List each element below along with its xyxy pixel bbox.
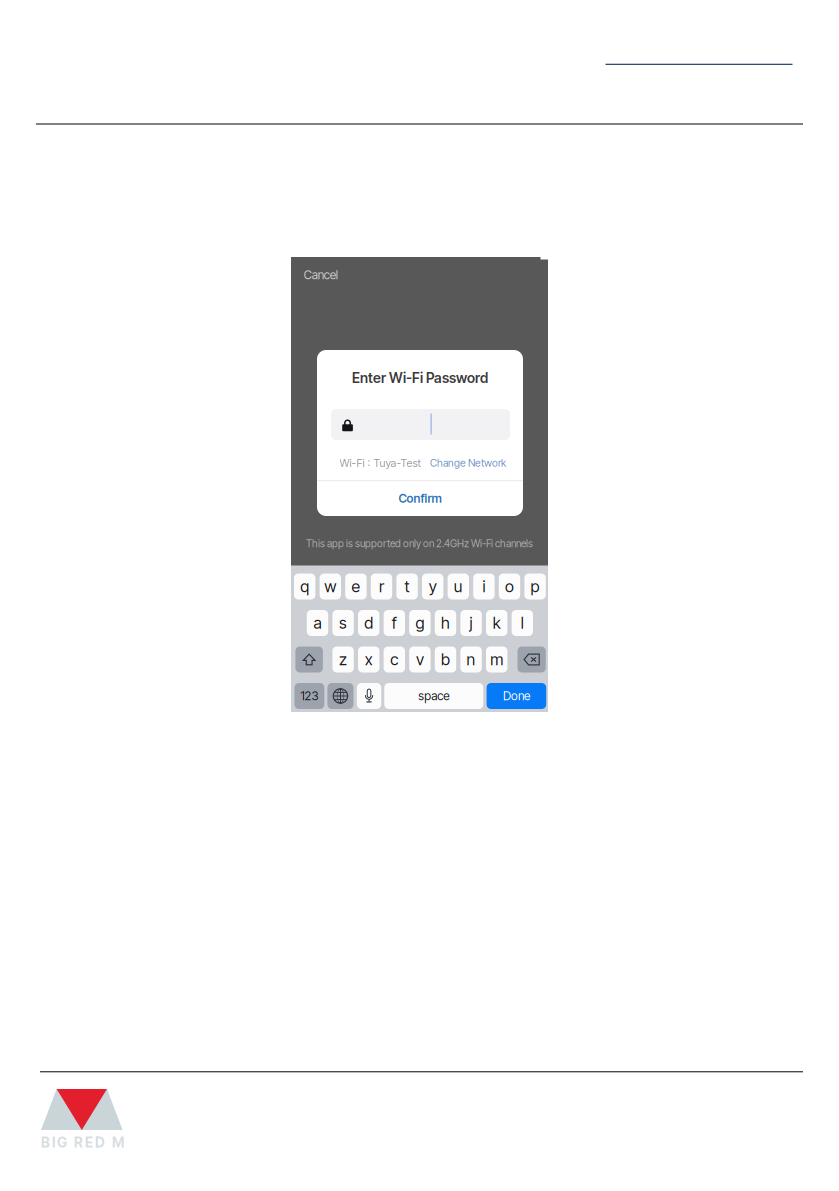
button[interactable]: Switch keyboard — [327, 683, 353, 709]
staticText: o — [505, 577, 514, 596]
button[interactable]: y — [422, 573, 443, 599]
button[interactable]: o — [499, 573, 520, 599]
button[interactable]: 123 — [294, 683, 324, 709]
button[interactable]: b — [435, 646, 456, 672]
button[interactable]: j — [460, 610, 482, 636]
staticText: b — [441, 650, 450, 669]
staticText: p — [531, 577, 540, 596]
button[interactable]: Change Network — [430, 455, 510, 471]
staticText: Cancel — [304, 268, 338, 282]
staticText: g — [415, 613, 424, 633]
staticText: Wi-Fi : Tuya-Test — [339, 456, 420, 470]
button[interactable]: l — [512, 610, 533, 636]
button[interactable]: Reference link — [605, 49, 792, 65]
staticText: n — [467, 650, 476, 669]
staticText: w — [324, 577, 336, 596]
staticText: s — [339, 613, 347, 633]
staticText: x — [365, 650, 373, 669]
button[interactable]: h — [435, 610, 456, 636]
staticText: l — [521, 613, 524, 633]
button[interactable]: n — [460, 646, 482, 672]
staticText: q — [300, 577, 309, 596]
button[interactable]: Shift — [295, 646, 323, 672]
staticText: space — [418, 689, 449, 703]
staticText: v — [416, 650, 424, 669]
staticText: d — [364, 613, 373, 633]
button[interactable]: q — [294, 573, 315, 599]
button[interactable]: k — [486, 610, 507, 636]
button[interactable]: g — [409, 610, 431, 636]
button[interactable]: e — [345, 573, 367, 599]
button[interactable]: d — [358, 610, 379, 636]
button[interactable]: Dictate — [357, 683, 381, 709]
button[interactable]: v — [409, 646, 431, 672]
button[interactable]: space — [384, 683, 483, 709]
staticText: f — [392, 613, 397, 633]
button[interactable]: p — [524, 573, 546, 599]
staticText: BIG RED M — [41, 1134, 124, 1151]
button[interactable]: z — [332, 646, 354, 672]
button[interactable]: f — [384, 610, 405, 636]
staticText: h — [441, 613, 450, 633]
staticText: m — [490, 650, 503, 669]
staticText: a — [313, 613, 321, 633]
staticText: Change Network — [430, 457, 506, 469]
button[interactable]: w — [320, 573, 341, 599]
button[interactable]: Delete — [517, 646, 546, 672]
button[interactable]: Done — [487, 683, 546, 709]
button[interactable]: u — [448, 573, 469, 599]
staticText: e — [351, 577, 360, 596]
staticText: c — [390, 650, 398, 669]
button[interactable]: a — [307, 610, 328, 636]
staticText: y — [429, 577, 437, 596]
button[interactable]: s — [332, 610, 354, 636]
button[interactable]: r — [371, 573, 392, 599]
staticText: t — [405, 577, 410, 596]
button[interactable]: Cancel — [304, 265, 348, 285]
staticText: This app is supported only on 2.4GHz Wi-… — [306, 537, 533, 550]
button[interactable]: t — [396, 573, 418, 599]
staticText: i — [482, 577, 485, 596]
staticText: 123 — [300, 689, 318, 703]
button[interactable]: Confirm — [317, 481, 523, 516]
button[interactable]: x — [358, 646, 379, 672]
staticText: Enter Wi-Fi Password — [352, 369, 488, 386]
staticText: Confirm — [398, 491, 441, 506]
staticText: k — [493, 613, 501, 633]
staticText: z — [339, 650, 347, 669]
staticText: r — [379, 577, 384, 596]
staticText: u — [454, 577, 463, 596]
staticText: j — [470, 613, 473, 633]
staticText: Done — [503, 689, 530, 703]
button[interactable]: m — [486, 646, 507, 672]
button[interactable]: i — [473, 573, 495, 599]
button[interactable]: c — [384, 646, 405, 672]
